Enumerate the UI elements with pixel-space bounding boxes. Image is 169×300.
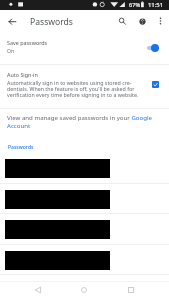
button[interactable]: Search xyxy=(114,13,130,29)
button[interactable] xyxy=(0,211,169,242)
button[interactable]: Save passwords xyxy=(0,32,169,64)
button[interactable]: Help xyxy=(134,13,150,29)
button[interactable]: View and manage saved passwords in your … xyxy=(0,108,169,135)
staticText: Save passwords xyxy=(7,39,48,46)
staticText: On xyxy=(7,48,14,55)
button[interactable]: Auto Sign-in xyxy=(0,65,169,107)
button[interactable]: More options xyxy=(152,13,168,29)
button[interactable]: Back xyxy=(4,13,20,29)
button[interactable] xyxy=(0,242,169,273)
staticText: 67% xyxy=(129,1,141,9)
staticText: 11:51 xyxy=(148,1,164,9)
staticText: Passwords xyxy=(30,16,73,28)
button[interactable] xyxy=(0,150,169,181)
button[interactable]: Home xyxy=(74,280,94,299)
staticText: View and manage saved passwords in your … xyxy=(7,113,152,129)
staticText: Auto Sign-in xyxy=(7,71,38,78)
button[interactable]: Recents xyxy=(121,280,141,299)
button[interactable] xyxy=(0,181,169,212)
staticText: Automatically sign in to websites using … xyxy=(7,79,139,98)
button[interactable]: Back xyxy=(28,280,48,299)
staticText: Passwords xyxy=(8,144,34,151)
